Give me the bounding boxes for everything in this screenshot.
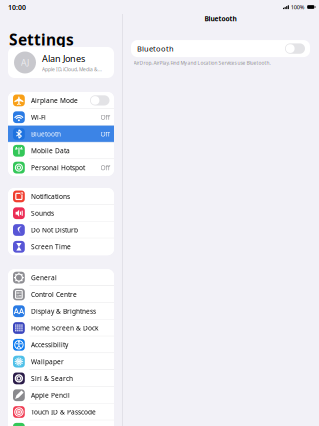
staticText: Off [100, 113, 109, 122]
staticText: Alan Jones [42, 52, 85, 64]
staticText: Mobile Data [31, 146, 70, 155]
staticText: Bluetooth [137, 43, 174, 54]
button[interactable]: Siri & Search [8, 370, 114, 387]
staticText: Home Screen & Dock [31, 324, 98, 332]
staticText: Accessibility [31, 340, 68, 349]
staticText: Bluetooth [31, 130, 61, 138]
staticText: Wallpaper [31, 357, 64, 366]
button[interactable]: Touch ID & Passcode [8, 404, 114, 420]
staticText: Notifications [31, 192, 70, 201]
button[interactable]: General [8, 269, 114, 286]
button[interactable]: Personal Hotspot [8, 159, 114, 176]
button[interactable]: Display & Brightness [8, 303, 114, 320]
staticText: Off [100, 130, 109, 138]
button[interactable]: Accessibility [8, 336, 114, 353]
button[interactable]: AJ [8, 47, 114, 78]
button[interactable]: Control Centre [8, 286, 114, 303]
button[interactable]: Notifications [8, 188, 114, 205]
button[interactable]: Apple Pencil [8, 387, 114, 404]
staticText: Apple ID, iCloud, Media &… [42, 66, 102, 73]
staticText: Control Centre [31, 290, 77, 299]
staticText: Screen Time [31, 242, 71, 251]
button[interactable]: Battery [8, 420, 114, 426]
staticText: Siri & Search [31, 374, 73, 383]
staticText: AirDrop, AirPlay, Find My and Location S… [133, 60, 270, 66]
staticText: Off [100, 163, 109, 172]
staticText: AJ [21, 57, 29, 68]
staticText: Bluetooth [204, 14, 236, 23]
staticText: General [31, 273, 57, 282]
button[interactable]: Bluetooth [8, 126, 114, 142]
button[interactable]: Wi-Fi [8, 109, 114, 126]
button[interactable]: Wallpaper [8, 353, 114, 370]
staticText: Apple Pencil [31, 391, 70, 400]
staticText: Settings [9, 29, 74, 50]
button[interactable]: Mobile Data [8, 142, 114, 159]
staticText: Touch ID & Passcode [31, 408, 96, 416]
staticText: Personal Hotspot [31, 163, 85, 172]
staticText: Airplane Mode [31, 96, 78, 105]
staticText: Do Not Disturb [31, 226, 78, 234]
staticText: 10:00 [8, 3, 26, 12]
staticText: Sounds [31, 209, 54, 218]
button[interactable]: Home Screen & Dock [8, 320, 114, 336]
button[interactable]: Do Not Disturb [8, 222, 114, 238]
button[interactable]: Screen Time [8, 238, 114, 255]
staticText: 100% [291, 3, 305, 11]
staticText: Wi-Fi [31, 113, 46, 122]
button[interactable]: Airplane Mode [8, 92, 114, 109]
button[interactable]: Sounds [8, 205, 114, 222]
staticText: Display & Brightness [31, 307, 96, 316]
